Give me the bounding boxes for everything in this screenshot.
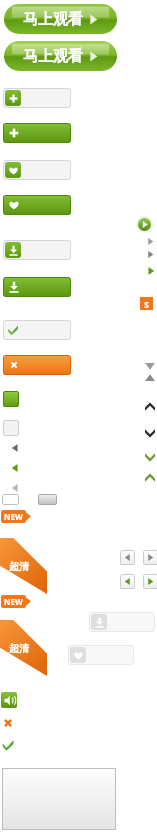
button[interactable]: Confirm — [3, 320, 71, 340]
button[interactable]: Download — [3, 240, 71, 260]
button[interactable]: Unchecked — [3, 420, 19, 436]
button[interactable]: 马上观看 — [4, 4, 117, 34]
staticText: 马上观看 — [23, 47, 83, 66]
button[interactable]: Next — [143, 574, 157, 589]
button[interactable]: Previous — [120, 550, 135, 565]
staticText: 马上观看 — [23, 10, 83, 29]
staticText: NEW — [4, 596, 23, 607]
staticText: S — [144, 298, 149, 310]
button[interactable]: Favorite — [3, 195, 71, 215]
button[interactable]: Next — [143, 550, 157, 565]
button[interactable]: Checked — [3, 391, 19, 407]
staticText: NEW — [4, 511, 23, 522]
button[interactable]: Download — [3, 277, 71, 297]
button[interactable]: Favorite — [3, 160, 71, 180]
button[interactable]: Play — [138, 218, 151, 231]
button[interactable]: Previous — [120, 574, 135, 589]
staticText: 超清 — [9, 560, 29, 573]
button[interactable]: 马上观看 — [4, 41, 117, 71]
staticText: 超清 — [9, 642, 29, 655]
button[interactable]: Close — [3, 355, 71, 375]
button[interactable]: Add — [3, 88, 71, 108]
button[interactable]: Add — [3, 123, 71, 143]
